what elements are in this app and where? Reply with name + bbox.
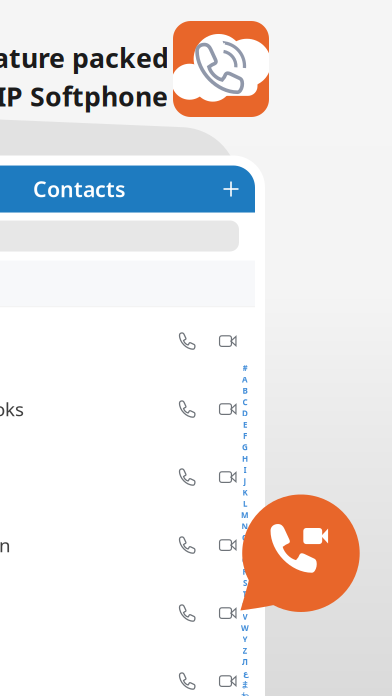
staticText: J bbox=[243, 476, 246, 486]
staticText: Q bbox=[242, 555, 248, 565]
staticText: Л bbox=[242, 657, 248, 667]
staticText: P bbox=[242, 544, 247, 554]
staticText: Z bbox=[242, 645, 247, 656]
button[interactable]: Amy Brooks bbox=[0, 375, 255, 443]
staticText: H bbox=[242, 453, 248, 464]
button[interactable]: Alan Bay bbox=[0, 307, 255, 375]
staticText: U bbox=[242, 600, 248, 611]
button[interactable]: Add contact bbox=[213, 171, 249, 207]
staticText: F bbox=[243, 431, 247, 441]
staticText: I bbox=[243, 464, 246, 475]
staticText: T bbox=[242, 589, 247, 599]
staticText: S bbox=[243, 577, 247, 588]
staticText: R bbox=[242, 566, 247, 577]
staticText: Cara Dean bbox=[0, 533, 11, 557]
staticText: ま bbox=[241, 680, 249, 689]
staticText: Feature packed bbox=[0, 40, 169, 75]
button[interactable]: Dan Ellis bbox=[0, 579, 255, 647]
staticText: Amy Brooks bbox=[0, 397, 24, 421]
button[interactable]: Ben Cole bbox=[0, 443, 255, 511]
staticText: V bbox=[242, 611, 247, 622]
staticText: Contacts bbox=[33, 175, 126, 203]
staticText: B bbox=[242, 385, 247, 396]
button[interactable]: Start a call bbox=[238, 492, 362, 614]
staticText: K bbox=[242, 487, 247, 498]
button[interactable]: Cara Dean bbox=[0, 511, 255, 579]
staticText: G bbox=[242, 442, 248, 452]
staticText: ع bbox=[242, 669, 247, 678]
staticText: L bbox=[243, 498, 247, 509]
staticText: A bbox=[242, 374, 248, 385]
button[interactable]: Eve Ford bbox=[0, 647, 255, 696]
staticText: VoIP Softphone bbox=[0, 78, 168, 114]
staticText: M bbox=[241, 510, 249, 520]
staticText: N bbox=[241, 521, 248, 532]
staticText: # bbox=[242, 363, 247, 373]
staticText: C bbox=[242, 397, 247, 407]
staticText: O bbox=[242, 532, 248, 543]
staticText: わ bbox=[241, 691, 249, 696]
staticText: Y bbox=[242, 634, 247, 645]
staticText: E bbox=[243, 419, 247, 430]
staticText: D bbox=[242, 408, 248, 419]
staticText: W bbox=[241, 623, 249, 633]
